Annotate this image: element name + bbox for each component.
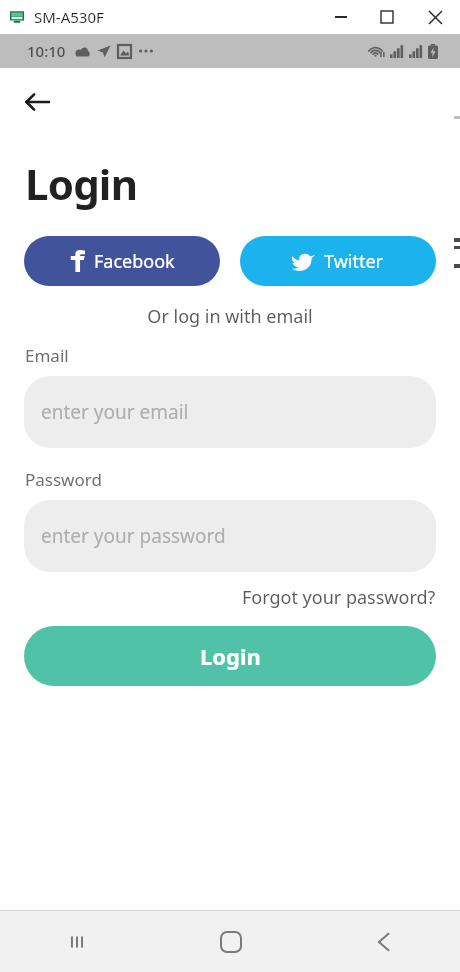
staticText: Email xyxy=(25,344,69,367)
staticText: Login xyxy=(200,641,261,671)
staticText: Twitter xyxy=(324,249,384,274)
staticText: Forgot your password? xyxy=(242,585,436,610)
button[interactable]: enter your email xyxy=(24,376,436,448)
staticText: Facebook xyxy=(94,249,175,274)
staticText: Password xyxy=(25,468,102,491)
button[interactable]: Close xyxy=(410,0,460,34)
staticText: Login xyxy=(25,155,138,212)
button[interactable]: Home xyxy=(154,911,307,972)
button[interactable]: Twitter xyxy=(240,236,436,286)
staticText: enter your email xyxy=(41,399,189,425)
button[interactable]: Forgot your password? xyxy=(242,585,436,610)
staticText: enter your password xyxy=(41,523,226,549)
button[interactable]: Minimize xyxy=(318,0,364,34)
button[interactable]: Back xyxy=(14,79,60,125)
button[interactable]: Back xyxy=(307,911,460,972)
staticText: Or log in with email xyxy=(0,304,460,329)
button[interactable]: Login xyxy=(24,626,436,686)
staticText: 10:10 xyxy=(27,41,66,61)
staticText: SM-A530F xyxy=(34,7,104,27)
button[interactable]: enter your password xyxy=(24,500,436,572)
button[interactable]: Maximize xyxy=(364,0,410,34)
button[interactable]: Recent apps xyxy=(0,911,154,972)
button[interactable]: Facebook xyxy=(24,236,220,286)
